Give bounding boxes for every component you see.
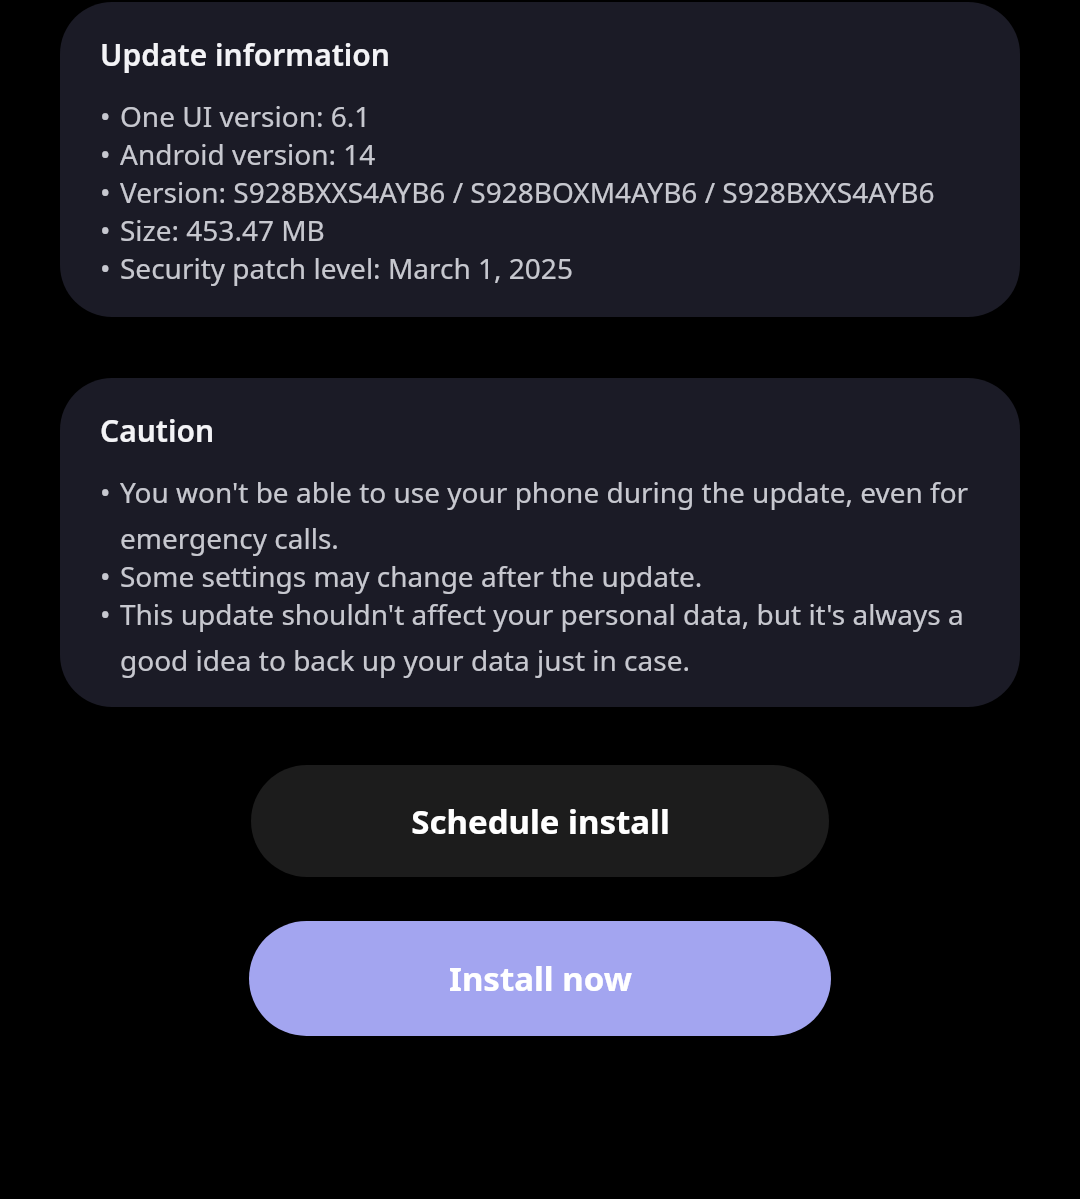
staticText: Caution [100,410,215,451]
staticText: • [100,97,120,135]
staticText: Some settings may change after the updat… [120,557,986,595]
button[interactable]: Install now [249,921,831,1036]
staticText: • [100,595,120,633]
staticText: You won't be able to use your phone duri… [120,473,986,557]
button[interactable]: Schedule install [251,765,829,877]
staticText: Update information [100,34,391,75]
staticText: • [100,473,120,511]
staticText: Schedule install [411,799,670,844]
staticText: Install now [449,956,632,1001]
staticText: One UI version: 6.1 [120,97,986,135]
staticText: Version: S928BXXS4AYB6 / S928BOXM4AYB6 /… [120,173,986,211]
staticText: • [100,557,120,595]
staticText: Android version: 14 [120,135,986,173]
staticText: • [100,173,120,211]
staticText: • [100,249,120,287]
staticText: • [100,211,120,249]
staticText: • [100,135,120,173]
staticText: Security patch level: March 1, 2025 [120,249,986,287]
staticText: Size: 453.47 MB [120,211,986,249]
staticText: This update shouldn't affect your person… [120,595,986,679]
